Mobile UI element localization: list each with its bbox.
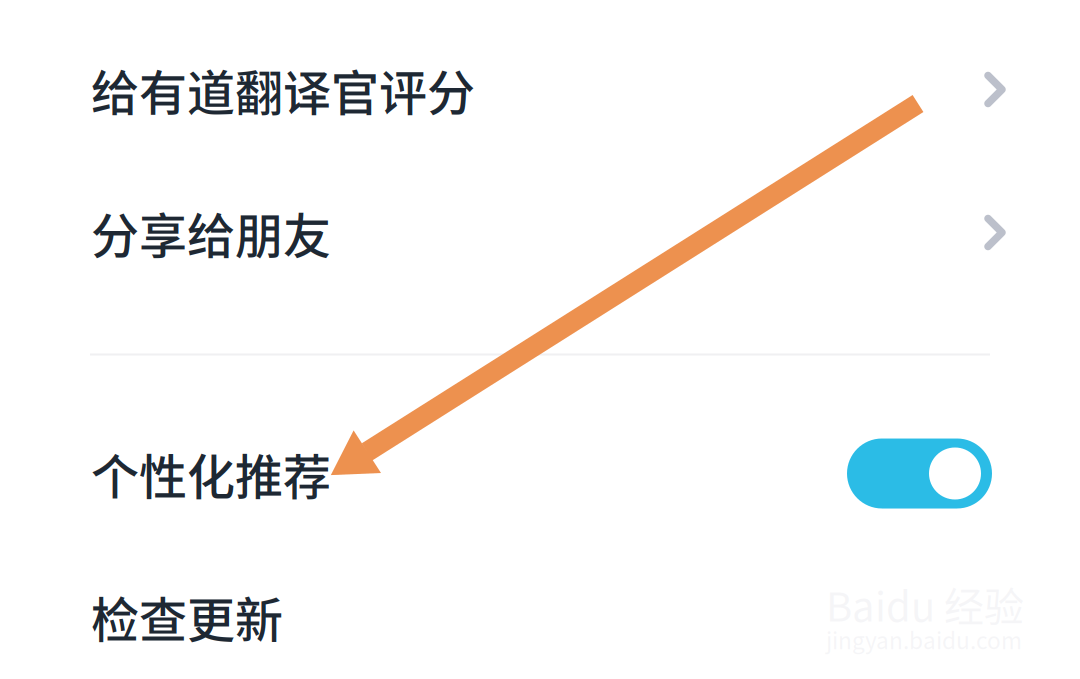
staticText: Baidu 经验: [826, 575, 1024, 633]
staticText: 个性化推荐: [91, 439, 331, 508]
staticText: 检查更新: [91, 582, 283, 651]
button[interactable]: 检查更新: [0, 545, 1080, 679]
staticText: 给有道翻译官评分: [91, 55, 475, 124]
staticText: 分享给朋友: [91, 198, 331, 267]
button[interactable]: 个性化推荐: [0, 402, 1080, 545]
button[interactable]: 分享给朋友: [0, 161, 1080, 304]
staticText: jingyan.baidu.com: [826, 623, 1022, 656]
button[interactable]: 给有道翻译官评分: [0, 18, 1080, 161]
